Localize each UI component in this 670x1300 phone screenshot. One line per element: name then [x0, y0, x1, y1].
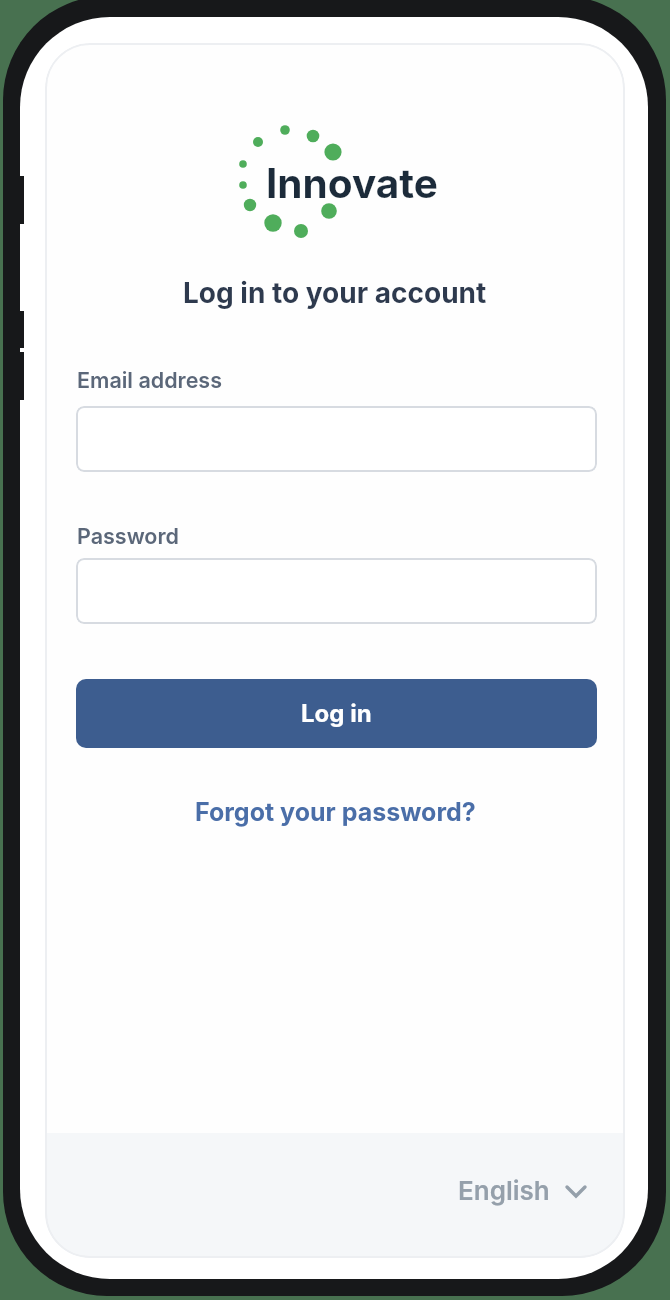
button[interactable]: Forgot your password?: [195, 797, 476, 827]
button[interactable]: [76, 406, 597, 472]
staticText: Log in: [301, 699, 372, 728]
staticText: Email address: [77, 367, 222, 393]
button[interactable]: Log in: [76, 679, 597, 748]
staticText: Password: [77, 523, 179, 549]
staticText: Innovate: [266, 159, 438, 207]
button[interactable]: English: [458, 1175, 588, 1206]
staticText: English: [458, 1175, 550, 1206]
staticText: Log in to your account: [183, 276, 487, 310]
button[interactable]: [76, 558, 597, 624]
